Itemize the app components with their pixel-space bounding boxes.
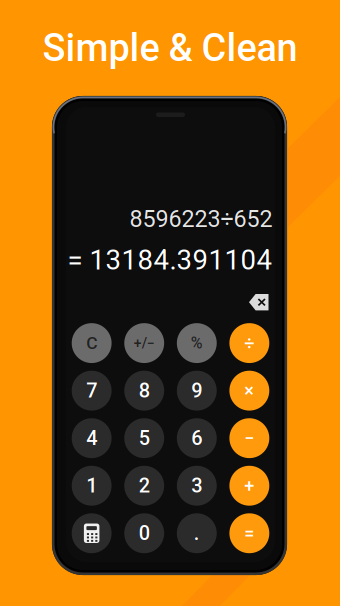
staticText: × <box>244 380 254 401</box>
button[interactable]: Plus <box>229 466 269 506</box>
staticText: + <box>244 475 254 496</box>
button[interactable]: Percent <box>177 323 217 363</box>
staticText: 1 <box>86 474 97 497</box>
staticText: C <box>86 333 97 353</box>
button[interactable]: 4 <box>72 418 112 458</box>
button[interactable]: 1 <box>72 466 112 506</box>
staticText: 5 <box>139 426 150 450</box>
button[interactable]: Equals <box>229 513 269 553</box>
staticText: % <box>191 334 203 352</box>
staticText: +/− <box>134 335 155 351</box>
button[interactable]: 3 <box>177 466 217 506</box>
staticText: − <box>244 428 254 449</box>
staticText: Simple & Clean <box>42 26 297 70</box>
staticText: 8596223÷652 <box>129 205 272 233</box>
staticText: 8 <box>139 379 150 402</box>
staticText: 4 <box>86 426 97 450</box>
staticText: 2 <box>139 474 150 497</box>
staticText: 3 <box>191 474 202 497</box>
button[interactable]: Decimal point <box>177 513 217 553</box>
staticText: 7 <box>86 379 97 402</box>
button[interactable]: 2 <box>124 466 164 506</box>
staticText: = <box>244 523 254 544</box>
button[interactable]: Clear <box>72 323 112 363</box>
button[interactable]: 9 <box>177 371 217 411</box>
button[interactable]: 6 <box>177 418 217 458</box>
staticText: 9 <box>191 379 202 402</box>
staticText: ÷ <box>244 333 254 354</box>
button[interactable]: Multiply <box>229 371 269 411</box>
button[interactable]: 0 <box>124 513 164 553</box>
button[interactable]: Calculator history <box>72 513 112 553</box>
staticText: 6 <box>191 426 202 450</box>
staticText: = 13184.391104 <box>67 244 272 276</box>
button[interactable]: Divide <box>229 323 269 363</box>
button[interactable]: 5 <box>124 418 164 458</box>
button[interactable]: Minus <box>229 418 269 458</box>
button[interactable]: 7 <box>72 371 112 411</box>
button[interactable]: Plus minus <box>124 323 164 363</box>
staticText: . <box>194 521 200 545</box>
staticText: 0 <box>139 521 150 545</box>
button[interactable]: 8 <box>124 371 164 411</box>
